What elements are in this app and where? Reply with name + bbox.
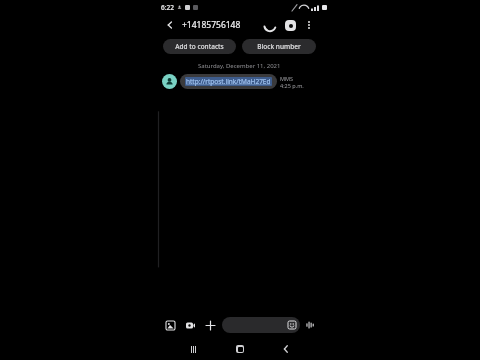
button[interactable]: http://rtpost.link/tMaH27Ed	[180, 74, 277, 89]
button[interactable]: Block number	[242, 39, 316, 54]
button[interactable]: Emoji	[287, 320, 297, 330]
button[interactable]: Back	[162, 17, 178, 33]
staticText: Add to contacts	[175, 42, 224, 51]
button[interactable]: Camera	[182, 317, 198, 333]
staticText: http://rtpost.link/tMaH27Ed	[186, 77, 271, 86]
staticText: +14185756148	[182, 19, 241, 31]
button[interactable]: Call	[261, 16, 279, 34]
button[interactable]: Gallery	[162, 317, 178, 333]
button[interactable]: Add to contacts	[163, 39, 236, 54]
button[interactable]: Recents	[182, 338, 204, 360]
staticText: Block number	[257, 42, 301, 51]
button[interactable]: Home	[229, 338, 251, 360]
button[interactable]: Video call	[281, 16, 299, 34]
staticText: Saturday, December 11, 2021	[198, 62, 281, 70]
button[interactable]: Back	[275, 338, 297, 360]
button[interactable]: Emoji	[222, 317, 300, 333]
staticText: 6:22	[161, 3, 174, 12]
staticText: MMS	[280, 75, 293, 82]
button[interactable]: Voice input	[303, 318, 317, 332]
staticText: 4:25 p.m.	[280, 82, 304, 89]
button[interactable]: More options	[301, 17, 317, 33]
button[interactable]: Add attachment	[202, 317, 218, 333]
